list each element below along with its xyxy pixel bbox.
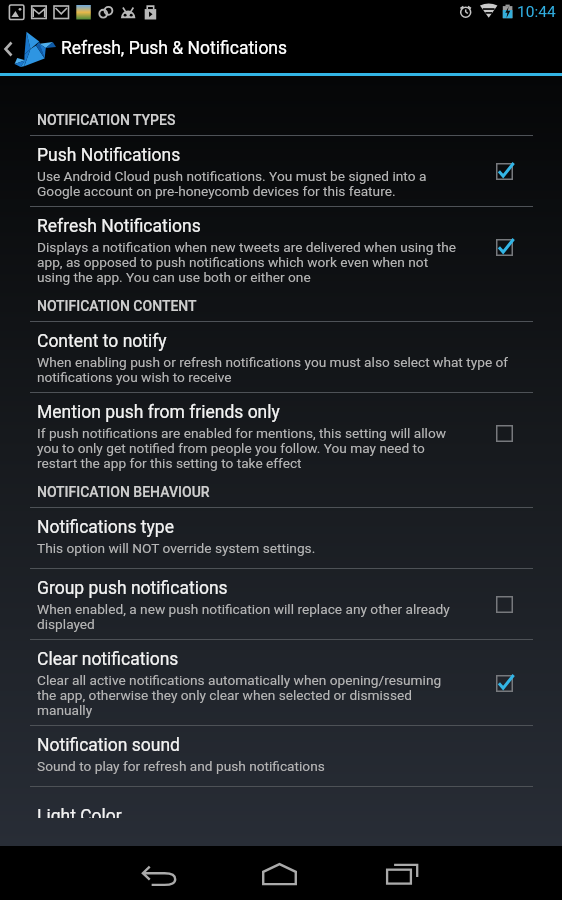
button[interactable]: Notifications type [30,508,533,569]
staticText: Use Android Cloud push notifications. Yo… [37,168,427,200]
button[interactable]: Notification sound [30,726,533,787]
staticText: Clear all active notifications automatic… [37,672,442,719]
button[interactable]: Clear notifications [30,640,533,726]
staticText: 10:44 [517,3,556,21]
button[interactable]: Group push notifications [30,569,533,640]
staticText: Content to notify [37,331,167,352]
button[interactable]: Checked [483,660,525,706]
staticText: Notification sound [37,735,180,756]
staticText: Light Color [37,806,122,818]
staticText: When enabled, a new push notification wi… [37,601,450,633]
button[interactable]: Recent apps [362,846,442,900]
staticText: Refresh, Push & Notifications [61,38,288,59]
button[interactable]: Push Notifications [30,136,533,207]
staticText: This option will NOT override system set… [37,540,316,556]
staticText: Push Notifications [37,145,181,166]
staticText: Mention push from friends only [37,402,280,423]
button[interactable]: Back [120,846,200,900]
staticText: NOTIFICATION CONTENT [37,298,197,314]
staticText: Displays a notification when new tweets … [37,239,457,286]
staticText: Clear notifications [37,649,179,670]
button[interactable]: Unchecked [483,581,525,627]
button[interactable]: Unchecked [483,410,525,456]
staticText: NOTIFICATION BEHAVIOUR [37,484,210,500]
button[interactable]: Mention push from friends only [30,393,533,472]
button[interactable]: Checked [483,224,525,270]
staticText: Refresh Notifications [37,216,201,237]
button[interactable]: Navigate up [0,24,58,73]
staticText: NOTIFICATION TYPES [37,112,176,128]
staticText: Sound to play for refresh and push notif… [37,758,325,774]
button[interactable]: Home [239,846,319,900]
staticText: Notifications type [37,517,174,538]
staticText: When enabling push or refresh notificati… [37,354,509,386]
staticText: Group push notifications [37,578,228,599]
staticText: If push notifications are enabled for me… [37,425,447,472]
button[interactable]: Refresh Notifications [30,207,533,286]
button[interactable]: Checked [483,148,525,194]
button[interactable]: Content to notify [30,322,533,393]
